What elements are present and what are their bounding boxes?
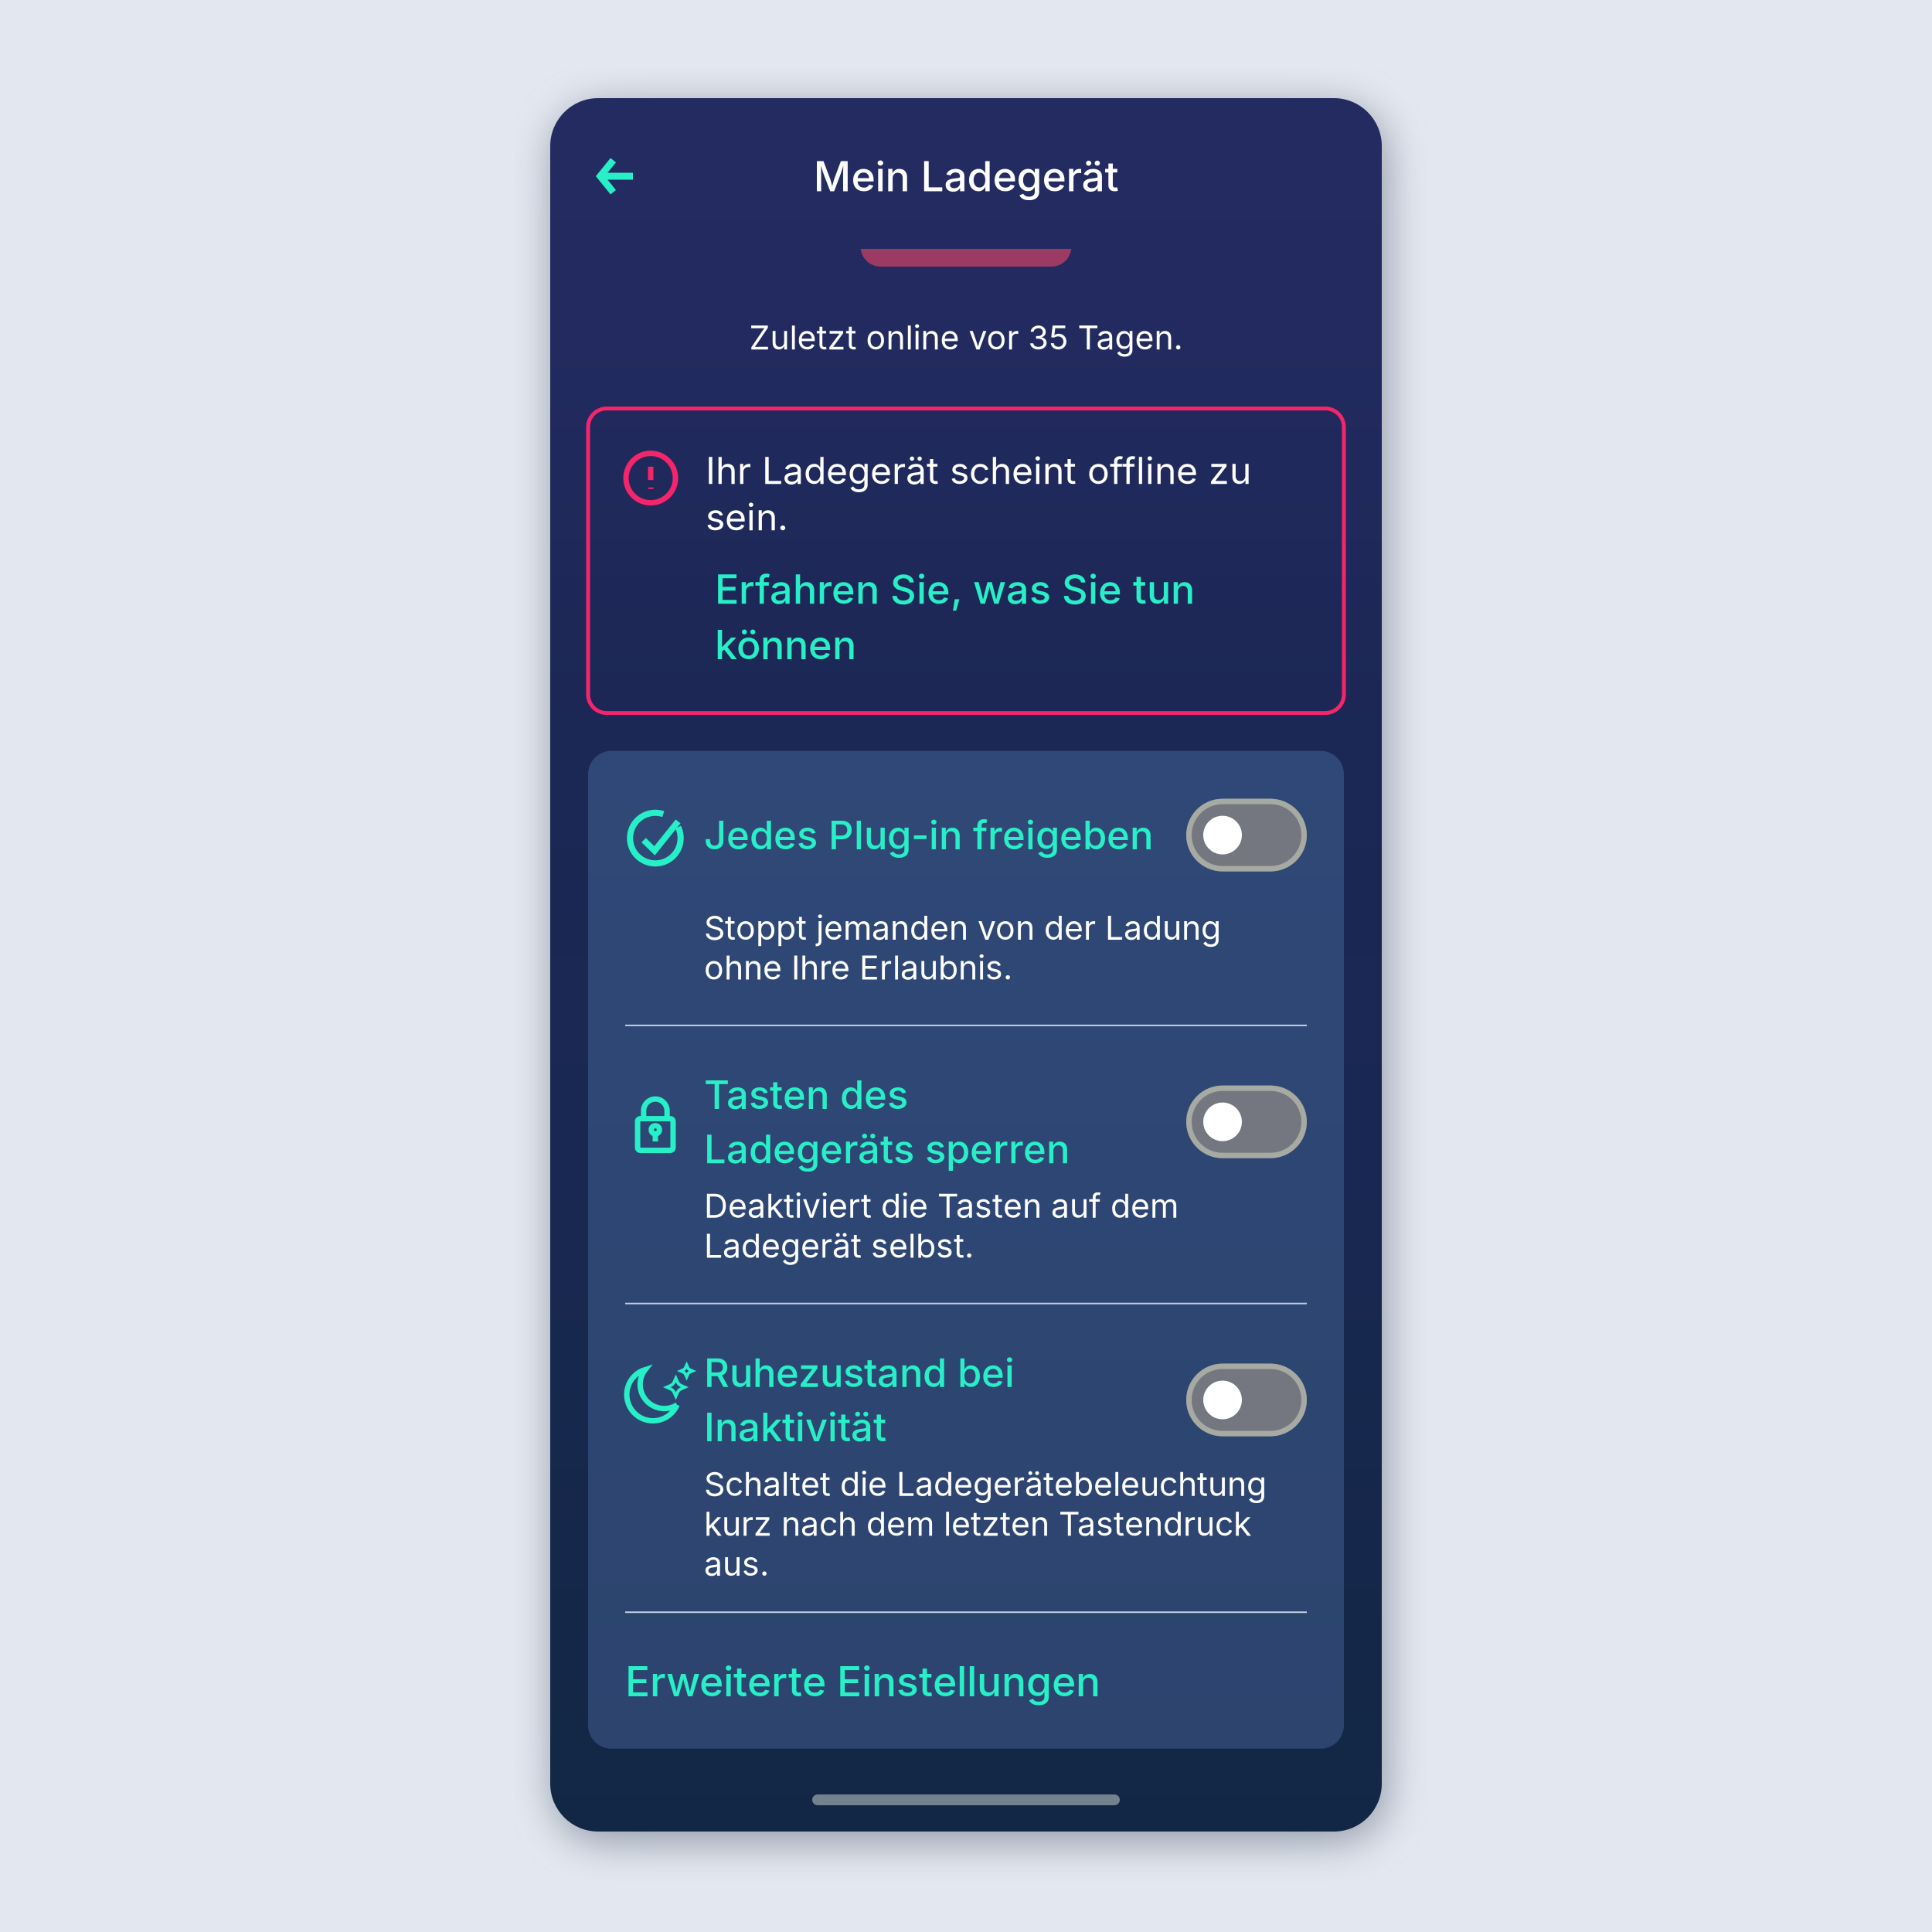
staticText: Erweiterte Einstellungen	[625, 1656, 1100, 1706]
staticText: Schaltet die Ladegerätebeleuchtung kurz …	[704, 1464, 1267, 1584]
button[interactable]: Erweiterte Einstellungen	[625, 1656, 1307, 1749]
staticText: Zuletzt online vor 35 Tagen.	[749, 318, 1183, 357]
staticText: Stoppt jemanden von der Ladung ohne Ihre…	[704, 908, 1221, 988]
staticText: Mein Ladegerät	[813, 151, 1119, 201]
staticText: Erfahren Sie, was Sie tun können	[715, 565, 1195, 669]
staticText: Tasten des Ladegeräts sperren	[704, 1071, 1070, 1173]
staticText: Ruhezustand bei Inaktivität	[704, 1349, 1015, 1451]
staticText: Ihr Ladegerät scheint offline zu sein.	[706, 448, 1251, 539]
button[interactable]: Ihr Ladegerät scheint offline zu sein.	[588, 409, 1344, 713]
button[interactable]: Zurück	[550, 131, 665, 221]
staticText: Jedes Plug-in freigeben	[704, 811, 1153, 859]
staticText: Deaktiviert die Tasten auf dem Ladegerät…	[704, 1186, 1179, 1266]
